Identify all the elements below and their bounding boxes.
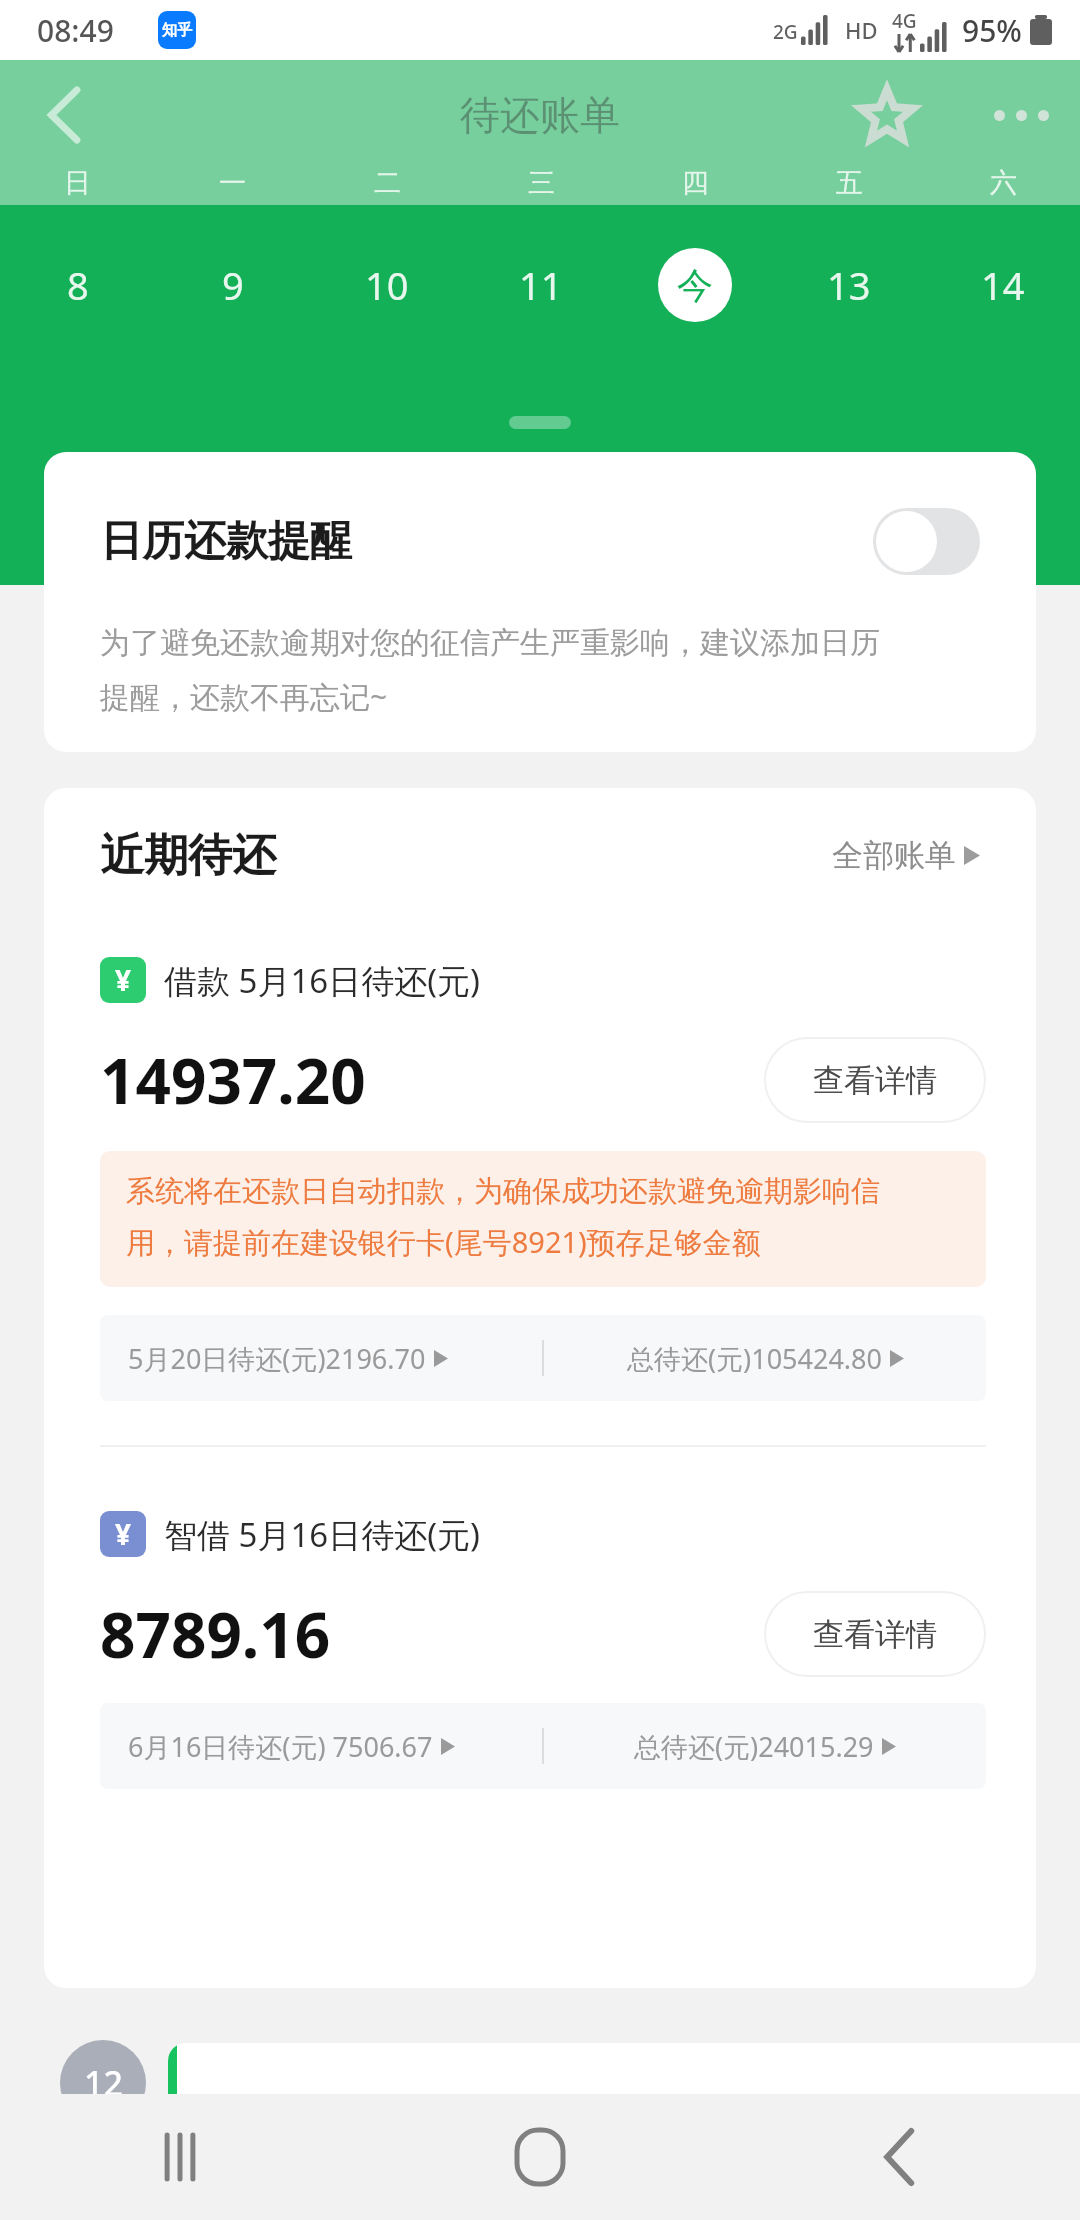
staticText: 5月20日待还(元)2196.70 [128, 1340, 426, 1377]
button[interactable]: 9 [155, 230, 310, 340]
staticText: 二 [374, 166, 401, 200]
staticText: 查看详情 [813, 1061, 937, 1100]
staticText: 借款 5月16日待还(元) [164, 958, 481, 1003]
staticText: 13 [827, 259, 871, 311]
staticText: 系统将在还款日自动扣款，为确保成功还款避免逾期影响信 [126, 1173, 880, 1210]
staticText: 一 [219, 166, 246, 200]
button[interactable]: 10 [310, 230, 464, 340]
button[interactable]: Home [360, 2094, 720, 2220]
staticText: 待还账单 [460, 90, 620, 140]
staticText: HD [845, 15, 878, 45]
button[interactable]: 8 [0, 230, 155, 340]
staticText: 日历还款提醒 [100, 515, 352, 568]
staticText: 总待还(元)105424.80 [627, 1340, 882, 1377]
button[interactable]: Toggle calendar reminder [873, 508, 980, 575]
staticText: 六 [990, 166, 1017, 200]
staticText: 总待还(元)24015.29 [634, 1728, 874, 1765]
staticText: 四 [682, 166, 709, 200]
staticText: 五 [836, 166, 863, 200]
button[interactable]: More options [978, 72, 1064, 158]
staticText: 今 [677, 263, 713, 308]
staticText: 全部账单 [832, 836, 956, 875]
button[interactable]: 还办借去查看 [168, 2043, 1080, 2173]
staticText: 查看详情 [813, 1615, 937, 1654]
staticText: 6月16日待还(元) 7506.67 [128, 1728, 433, 1765]
button[interactable]: Back [22, 72, 108, 158]
button[interactable]: Back [720, 2094, 1080, 2220]
staticText: 为了避免还款逾期对您的征信产生严重影响，建议添加日历 [100, 624, 880, 662]
staticText: 95% [962, 10, 1022, 51]
staticText: 4G [892, 8, 917, 34]
button[interactable]: 14 [926, 230, 1080, 340]
staticText: ¥ [115, 1515, 132, 1553]
staticText: 智借 5月16日待还(元) [164, 1512, 481, 1557]
button[interactable]: 6月16日待还(元) 7506.67 [100, 1703, 542, 1789]
staticText: 提醒，还款不再忘记~ [100, 676, 388, 717]
staticText: 三 [528, 166, 555, 200]
staticText: 11 [519, 259, 563, 311]
staticText: 日 [64, 166, 91, 200]
staticText: 8789.16 [100, 1592, 331, 1676]
button[interactable]: 查看详情 [766, 1039, 984, 1121]
button[interactable]: 11 [464, 230, 618, 340]
staticText: 近期待还 [100, 828, 276, 883]
button[interactable]: 日历还款提醒 [44, 452, 1036, 752]
staticText: 14 [981, 259, 1025, 311]
button[interactable]: 5月20日待还(元)2196.70 [100, 1315, 542, 1401]
staticText: 9 [222, 259, 244, 311]
staticText: 14937.20 [100, 1038, 366, 1122]
staticText: ¥ [115, 961, 132, 999]
button[interactable]: Favorite [844, 72, 930, 158]
button[interactable]: 总待还(元)105424.80 [544, 1315, 986, 1401]
button[interactable]: 今 [618, 230, 772, 340]
staticText: 知乎 [162, 21, 192, 40]
button[interactable]: 全部账单 [826, 830, 986, 881]
staticText: 2G [773, 19, 798, 45]
button[interactable]: 查看详情 [766, 1593, 984, 1675]
button[interactable]: Recent apps [0, 2094, 360, 2220]
button[interactable]: 13 [772, 230, 926, 340]
staticText: 08:49 [37, 10, 114, 51]
staticText: 用，请提前在建设银行卡(尾号8921)预存足够金额 [126, 1222, 761, 1262]
staticText: 8 [67, 259, 89, 311]
staticText: 10 [365, 259, 409, 311]
staticText: 12 [84, 2060, 123, 2106]
button[interactable]: 总待还(元)24015.29 [544, 1703, 986, 1789]
